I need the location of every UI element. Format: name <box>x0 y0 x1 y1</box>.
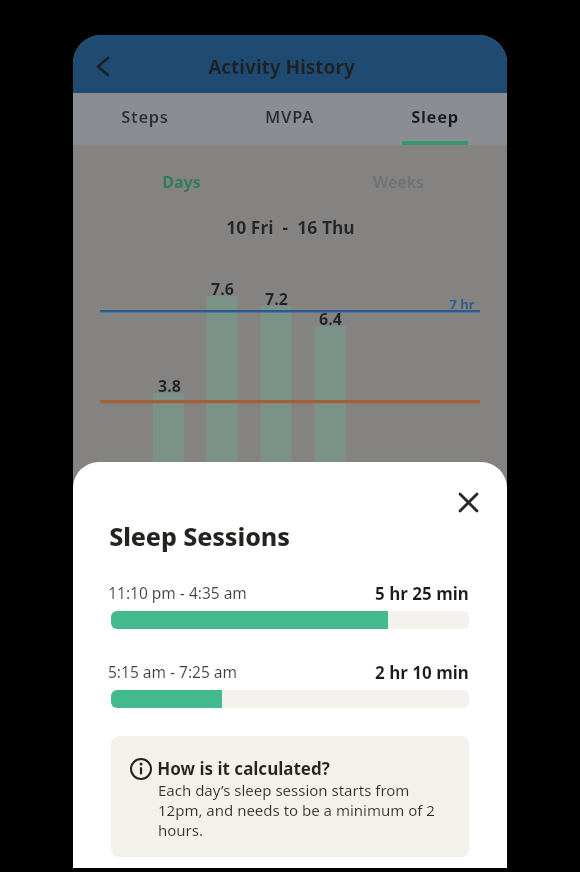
staticText: Activity History <box>208 54 355 80</box>
staticText: 2 hr 10 min <box>375 661 469 684</box>
staticText: Weeks <box>373 171 424 193</box>
staticText: How is it calculated? <box>157 757 330 780</box>
button[interactable] <box>450 484 486 520</box>
button[interactable]: Days <box>73 171 290 193</box>
button[interactable]: Sleep <box>362 93 507 145</box>
staticText: 10 Fri - 16 Thu <box>226 215 355 239</box>
button[interactable]: Weeks <box>290 171 507 193</box>
button[interactable]: MVPA <box>217 93 362 145</box>
staticText: Days <box>162 171 201 193</box>
staticText: 6.4 <box>319 308 342 330</box>
staticText: hours. <box>158 820 204 840</box>
staticText: 11:10 pm - 4:35 am <box>108 582 247 603</box>
staticText: MVPA <box>265 105 314 127</box>
staticText: Each day’s sleep session starts from <box>158 780 410 800</box>
button[interactable]: Steps <box>73 93 217 145</box>
staticText: 5:15 am - 7:25 am <box>108 661 237 682</box>
staticText: Sleep <box>411 105 459 127</box>
staticText: 3.8 <box>158 375 181 397</box>
staticText: Sleep Sessions <box>109 519 290 553</box>
staticText: 5 hr 25 min <box>375 582 469 605</box>
staticText: 7 hr <box>449 295 475 313</box>
staticText: 12pm, and needs to be a minimum of 2 <box>158 800 435 820</box>
staticText: 7.6 <box>211 278 234 300</box>
staticText: Steps <box>121 105 169 127</box>
staticText: 7.2 <box>265 288 288 310</box>
button[interactable] <box>88 51 118 81</box>
